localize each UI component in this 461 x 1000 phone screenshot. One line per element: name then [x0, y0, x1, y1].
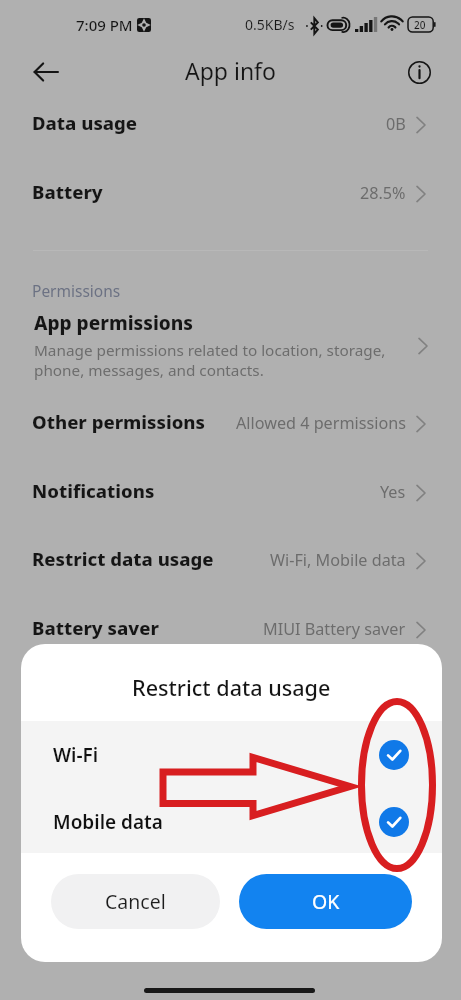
staticText: Restrict data usage — [132, 673, 331, 702]
button[interactable]: Notifications — [0, 459, 461, 527]
button[interactable]: Restrict data usage — [0, 527, 461, 595]
staticText: MIUI Battery saver — [263, 618, 406, 640]
button[interactable]: OK — [239, 874, 412, 929]
button[interactable]: Battery saver — [0, 596, 461, 664]
staticText: 0.5KB/s — [245, 15, 295, 34]
button[interactable]: Cancel — [51, 874, 220, 929]
button[interactable]: Mobile data — [21, 789, 442, 855]
button[interactable]: Other permissions — [0, 390, 461, 458]
staticText: Data usage — [32, 110, 138, 135]
staticText: Notifications — [32, 478, 155, 503]
staticText: Wi-Fi, Mobile data — [270, 549, 406, 571]
staticText: App info — [185, 55, 276, 86]
staticText: OK — [312, 888, 340, 915]
staticText: 20 — [414, 18, 426, 32]
button[interactable]: Info — [396, 48, 444, 96]
staticText: Battery saver — [32, 615, 159, 640]
staticText: Cancel — [105, 888, 166, 915]
staticText: App permissions — [34, 310, 193, 336]
button[interactable]: App permissions — [0, 305, 461, 385]
staticText: 0B — [386, 113, 406, 135]
button[interactable]: Battery — [0, 160, 461, 228]
staticText: 7:09 PM — [76, 15, 133, 35]
staticText: Yes — [380, 481, 406, 503]
staticText: 28.5% — [360, 182, 406, 204]
staticText: Restrict data usage — [32, 546, 214, 571]
button[interactable]: Data usage — [0, 91, 461, 159]
staticText: Battery — [32, 179, 103, 204]
button[interactable]: Wi-Fi — [21, 722, 442, 788]
staticText: Other permissions — [32, 409, 205, 434]
staticText: Wi-Fi — [53, 742, 99, 768]
staticText: Mobile data — [53, 809, 163, 835]
staticText: Manage permissions related to location, … — [34, 340, 386, 381]
staticText: Allowed 4 permissions — [236, 412, 406, 434]
staticText: Permissions — [32, 280, 121, 301]
button[interactable]: Back — [22, 48, 70, 96]
